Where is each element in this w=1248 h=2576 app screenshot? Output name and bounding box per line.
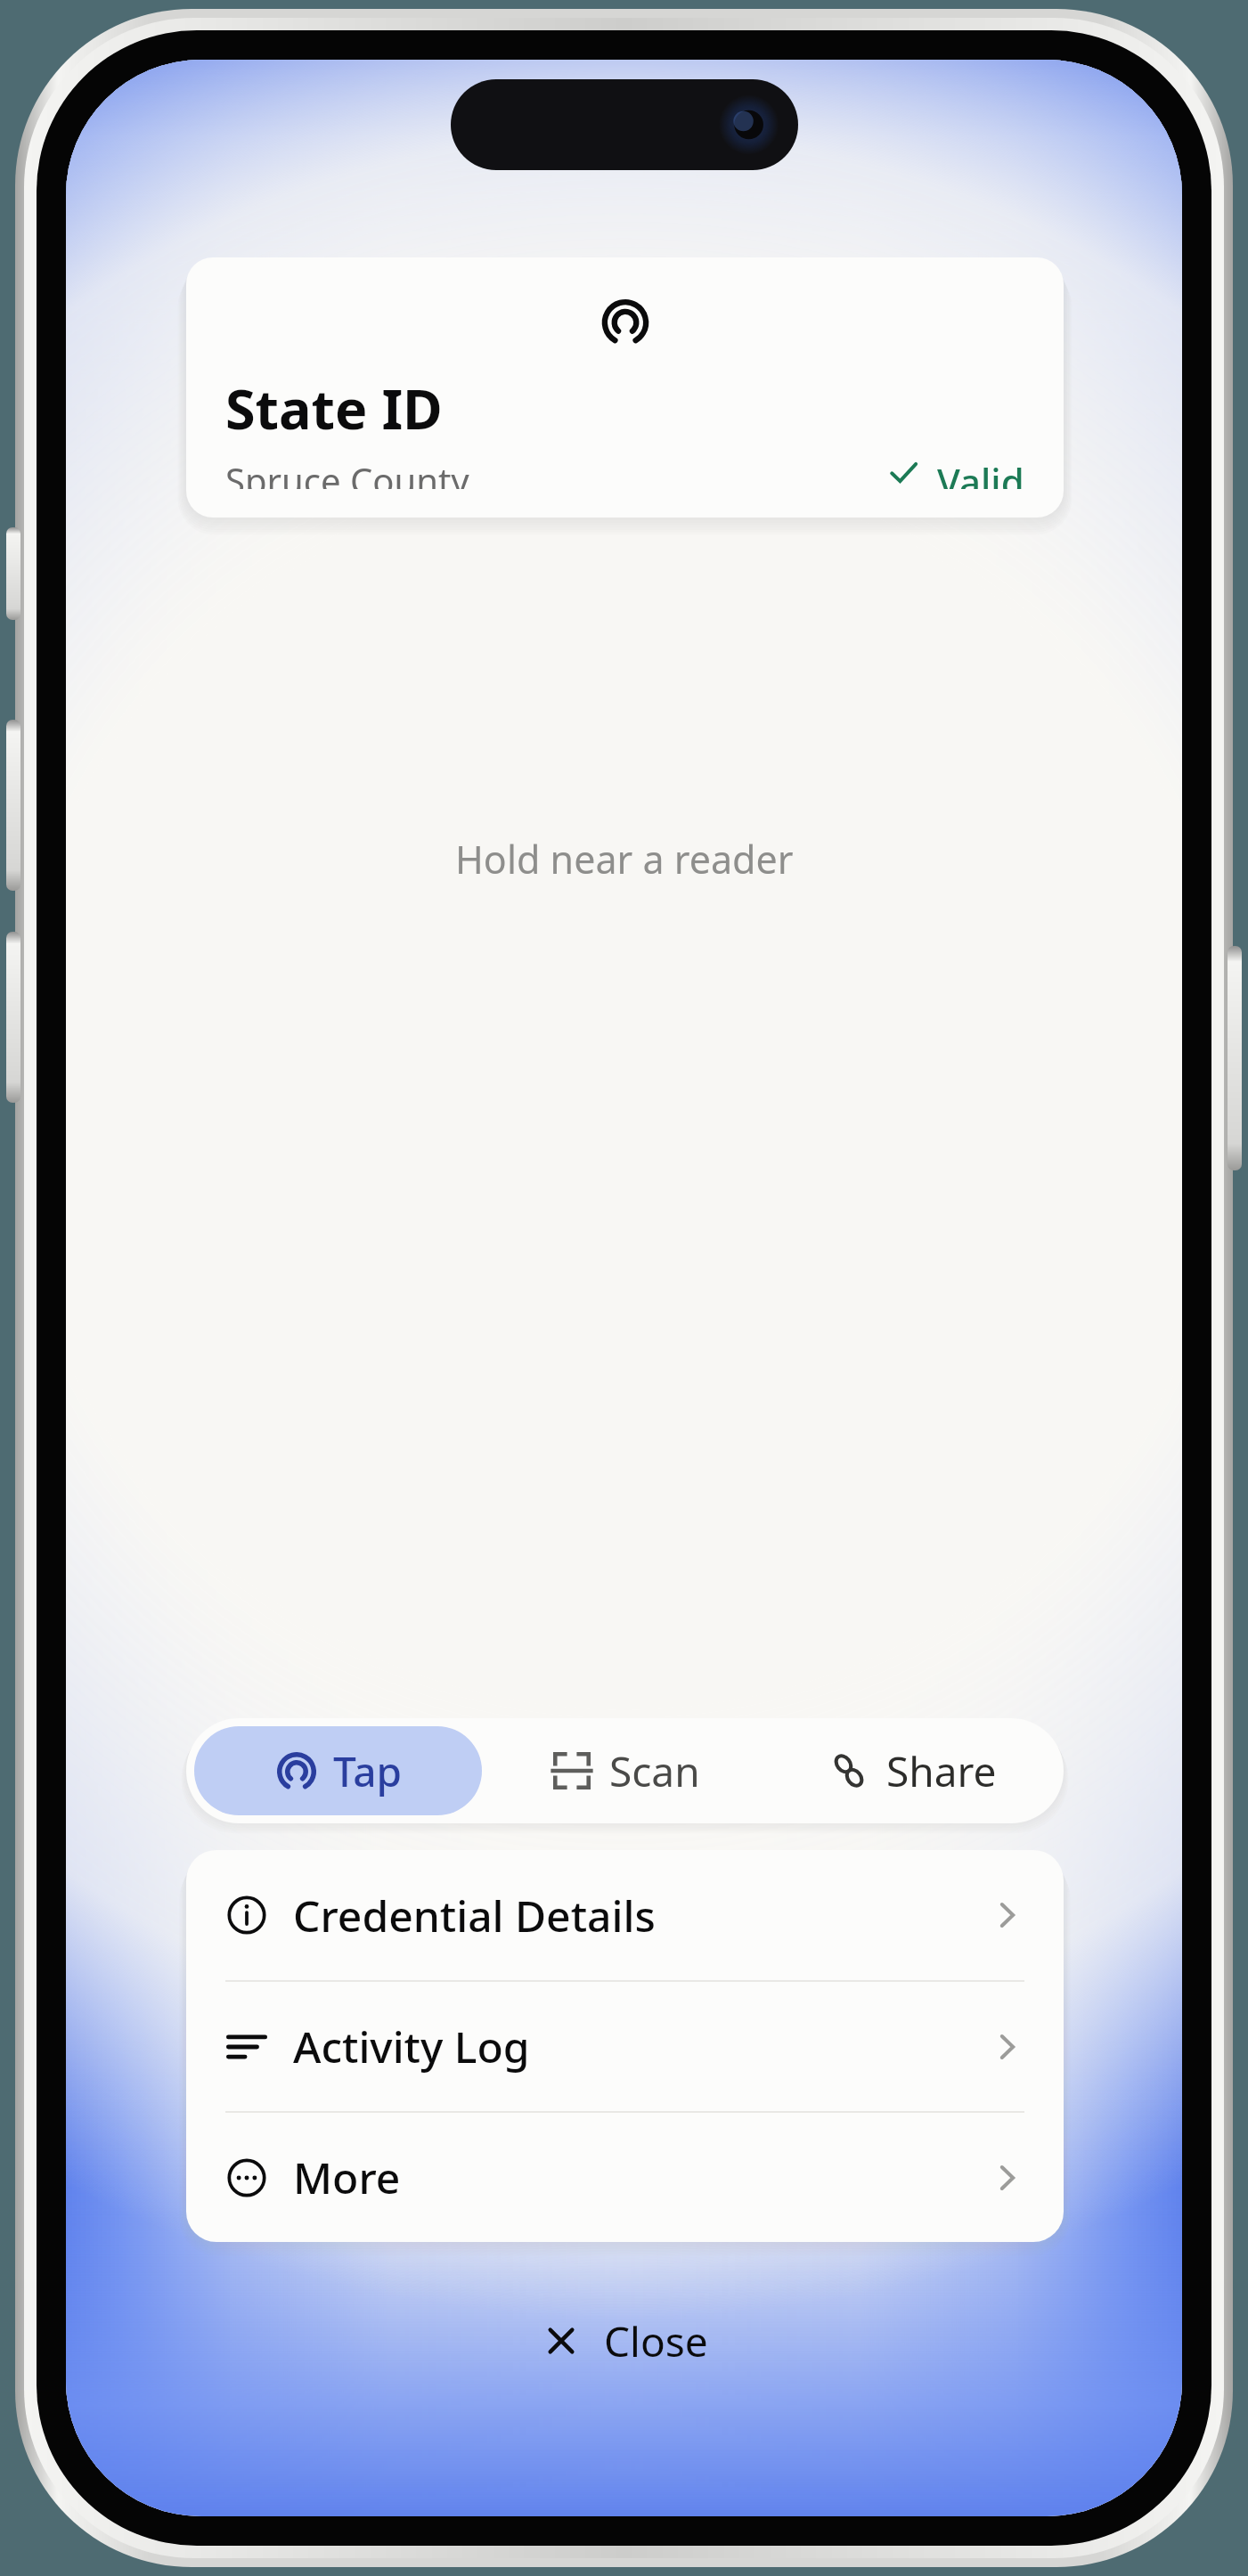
button[interactable]: Credential Details: [186, 1850, 1064, 1980]
button[interactable]: Activity Log: [186, 1982, 1064, 2111]
button[interactable]: Contactless: [186, 257, 1064, 518]
staticText: More: [293, 2148, 401, 2206]
other: Contactless: [599, 295, 652, 348]
button[interactable]: Tap: [194, 1726, 482, 1815]
staticText: Spruce County: [225, 456, 469, 489]
staticText: Scan: [609, 1743, 700, 1799]
staticText: Activity Log: [293, 2018, 530, 2075]
button[interactable]: Close: [466, 2291, 783, 2391]
staticText: Credential Details: [293, 1887, 656, 1944]
staticText: State ID: [225, 371, 443, 445]
staticText: Hold near a reader: [455, 833, 794, 885]
staticText: Valid: [937, 456, 1024, 489]
staticText: Share: [886, 1743, 997, 1799]
button[interactable]: Share: [769, 1726, 1056, 1815]
staticText: Close: [604, 2313, 708, 2369]
button[interactable]: Scan: [482, 1726, 769, 1815]
button[interactable]: More: [186, 2113, 1064, 2242]
staticText: Tap: [333, 1743, 403, 1799]
